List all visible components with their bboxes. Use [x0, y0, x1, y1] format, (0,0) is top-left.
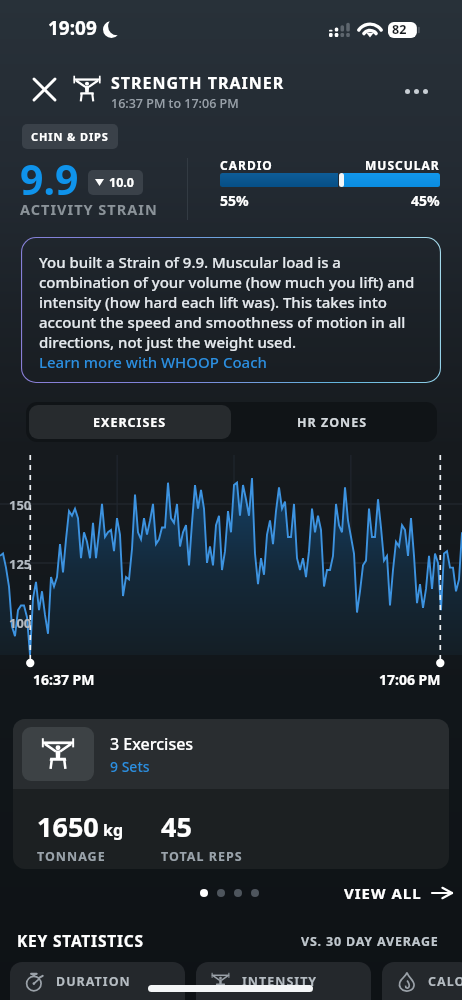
- staticText: CALORIES: [428, 973, 462, 990]
- staticText: kg: [103, 819, 124, 841]
- staticText: VIEW ALL: [344, 883, 422, 903]
- staticText: 82: [392, 21, 407, 38]
- staticText: 17:06 PM: [379, 670, 441, 689]
- button[interactable]: Close: [26, 71, 62, 107]
- button[interactable]: EXERCISES: [29, 405, 231, 439]
- button[interactable]: INTENSITY: [196, 962, 371, 1000]
- staticText: 125: [9, 555, 32, 573]
- staticText: DURATION: [56, 973, 131, 990]
- staticText: 150: [9, 496, 32, 514]
- button[interactable]: HR ZONES: [231, 405, 434, 439]
- staticText: 100: [9, 614, 32, 632]
- button[interactable]: More options: [396, 71, 436, 111]
- staticText: KEY STATISTICS: [17, 930, 144, 951]
- button[interactable]: CALORIES: [382, 962, 462, 1000]
- staticText: MUSCULAR: [365, 157, 440, 173]
- staticText: TONNAGE: [37, 848, 106, 865]
- staticText: 9 Sets: [110, 757, 150, 776]
- staticText: Learn more with WHOOP Coach: [39, 352, 267, 372]
- staticText: 9.9: [20, 151, 79, 207]
- staticText: You built a Strain of 9.9. Muscular load…: [39, 252, 423, 352]
- staticText: CHIN & DIPS: [31, 129, 109, 144]
- staticText: 45%: [411, 191, 440, 210]
- staticText: 3 Exercises: [110, 733, 194, 755]
- staticText: VS. 30 DAY AVERAGE: [301, 933, 439, 950]
- staticText: 55%: [220, 191, 249, 210]
- staticText: HR ZONES: [297, 414, 368, 431]
- button[interactable]: DURATION: [10, 962, 185, 1000]
- staticText: 10.0: [109, 174, 134, 191]
- staticText: 45: [161, 808, 192, 845]
- button[interactable]: 3 Exercises: [13, 719, 449, 789]
- staticText: STRENGTH TRAINER: [111, 72, 285, 94]
- staticText: 16:37 PM to 17:06 PM: [111, 95, 239, 112]
- button[interactable]: VIEW ALL: [344, 883, 452, 903]
- staticText: 1650: [37, 808, 99, 845]
- staticText: INTENSITY: [242, 973, 318, 990]
- staticText: CARDIO: [220, 157, 273, 173]
- staticText: EXERCISES: [93, 414, 167, 431]
- staticText: 19:09: [48, 15, 97, 41]
- button[interactable]: You built a Strain of 9.9. Muscular load…: [21, 237, 441, 383]
- button[interactable]: CHIN & DIPS: [22, 124, 118, 149]
- staticText: 16:37 PM: [33, 670, 95, 689]
- staticText: TOTAL REPS: [161, 848, 243, 865]
- staticText: ACTIVITY STRAIN: [20, 199, 158, 219]
